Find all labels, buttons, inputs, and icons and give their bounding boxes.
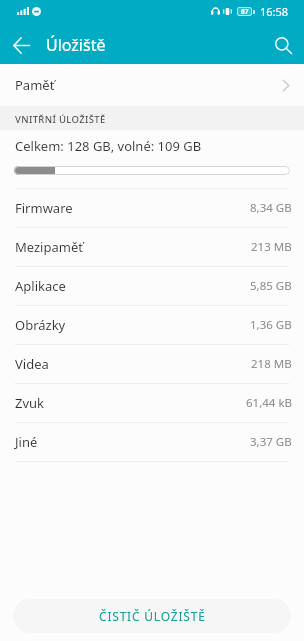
staticText: Firmware bbox=[15, 199, 73, 217]
staticText: 213 MB bbox=[251, 239, 292, 255]
staticText: ČISTIČ ÚLOŽIŠTĚ bbox=[99, 608, 206, 624]
button[interactable]: Obrázky bbox=[0, 306, 304, 345]
staticText: 67 bbox=[241, 7, 249, 16]
button[interactable]: Mezipaměť bbox=[0, 228, 304, 267]
staticText: 8,34 GB bbox=[250, 200, 292, 216]
button[interactable]: ČISTIČ ÚLOŽIŠTĚ bbox=[13, 599, 291, 633]
button[interactable]: Firmware bbox=[0, 189, 304, 228]
staticText: Obrázky bbox=[15, 316, 66, 334]
staticText: 1,36 GB bbox=[250, 317, 292, 333]
button[interactable]: Zvuk bbox=[0, 384, 304, 423]
staticText: 5,85 GB bbox=[250, 278, 292, 294]
staticText: Celkem: 128 GB, volné: 109 GB bbox=[15, 137, 202, 155]
staticText: Videa bbox=[15, 355, 49, 373]
staticText: Aplikace bbox=[15, 277, 66, 295]
staticText: Mezipaměť bbox=[15, 238, 83, 256]
staticText: 16:58 bbox=[260, 4, 289, 19]
staticText: Jiné bbox=[15, 433, 38, 451]
button[interactable]: Jiné bbox=[0, 423, 304, 462]
button[interactable]: Paměť bbox=[0, 64, 304, 106]
staticText: Zvuk bbox=[15, 394, 45, 412]
button[interactable]: Back bbox=[0, 24, 42, 66]
button[interactable]: Search bbox=[262, 24, 304, 66]
staticText: 218 MB bbox=[251, 356, 292, 372]
staticText: VNITŘNÍ ÚLOŽIŠTĚ bbox=[15, 113, 106, 126]
staticText: Paměť bbox=[15, 76, 55, 94]
button[interactable]: Aplikace bbox=[0, 267, 304, 306]
staticText: Úložiště bbox=[46, 34, 106, 56]
button[interactable]: Videa bbox=[0, 345, 304, 384]
staticText: 61,44 kB bbox=[246, 395, 292, 411]
staticText: 3,37 GB bbox=[250, 434, 292, 450]
